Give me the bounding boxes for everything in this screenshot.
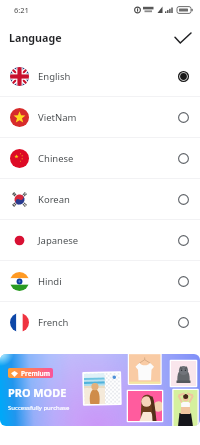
staticText: Chinese bbox=[38, 152, 74, 165]
button[interactable]: English bbox=[0, 56, 200, 96]
staticText: Korean bbox=[38, 193, 70, 206]
staticText: 6:21 bbox=[14, 5, 29, 15]
button[interactable]: Confirm bbox=[170, 25, 196, 51]
button[interactable]: French bbox=[0, 302, 200, 342]
button[interactable]: Premium bbox=[0, 354, 200, 426]
button[interactable]: Chinese bbox=[0, 138, 200, 178]
staticText: VietNam bbox=[38, 111, 77, 124]
staticText: French bbox=[38, 316, 69, 329]
button[interactable]: VietNam bbox=[0, 97, 200, 137]
staticText: PRO MODE bbox=[8, 385, 67, 400]
staticText: Hindi bbox=[38, 275, 62, 288]
button[interactable]: Korean bbox=[0, 179, 200, 219]
staticText: Japanese bbox=[38, 234, 79, 247]
button[interactable]: Japanese bbox=[0, 220, 200, 260]
staticText: Language bbox=[9, 31, 62, 46]
staticText: English bbox=[38, 70, 71, 83]
button[interactable]: Hindi bbox=[0, 261, 200, 301]
staticText: Successfully purchase bbox=[8, 404, 70, 412]
staticText: Premium bbox=[21, 369, 50, 378]
